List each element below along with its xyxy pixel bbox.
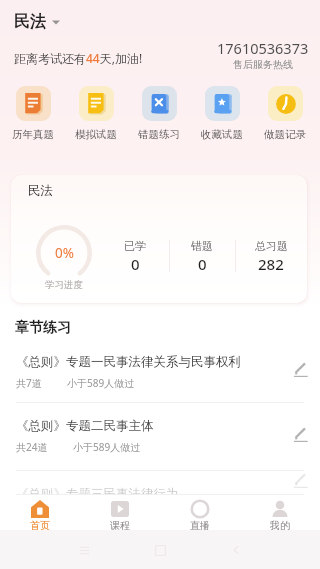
- button[interactable]: Menu: [75, 541, 93, 559]
- button[interactable]: 历年真题: [16, 86, 51, 121]
- staticText: 收藏试题: [201, 128, 243, 141]
- button[interactable]: 总习题: [241, 239, 301, 274]
- staticText: 17610536373: [217, 38, 309, 58]
- staticText: 总习题: [255, 239, 288, 253]
- staticText: 距离考试还有44天,加油!: [14, 50, 143, 66]
- button[interactable]: 直播: [160, 500, 240, 530]
- staticText: 已学: [124, 239, 146, 253]
- staticText: 共18道: [16, 508, 48, 522]
- staticText: 小于589人做过: [67, 376, 135, 390]
- staticText: 共24道: [16, 440, 48, 454]
- staticText: 错题: [191, 239, 213, 253]
- staticText: 《总则》专题一民事法律关系与民事权利: [16, 354, 241, 370]
- staticText: 《总则》专题三民事法律行为: [16, 486, 179, 502]
- staticText: 0: [198, 254, 207, 274]
- button[interactable]: 错题: [172, 239, 232, 274]
- button[interactable]: 编辑: [287, 468, 313, 492]
- button[interactable]: 课程: [80, 500, 160, 530]
- staticText: 售后服务热线: [233, 58, 293, 71]
- staticText: 0: [131, 254, 140, 274]
- staticText: 共7道: [16, 376, 42, 390]
- staticText: 0%: [55, 244, 74, 262]
- staticText: 小于589人做过: [73, 440, 141, 454]
- button[interactable]: 《总则》专题一民事法律关系与民事权利: [0, 341, 320, 403]
- staticText: 小于589人做过: [73, 508, 141, 522]
- staticText: 民法: [28, 183, 53, 199]
- staticText: 历年真题: [12, 128, 54, 141]
- button[interactable]: 收藏试题: [205, 86, 240, 121]
- button[interactable]: 民法: [11, 175, 307, 303]
- staticText: 模拟试题: [75, 128, 117, 141]
- staticText: 学习进度: [37, 279, 91, 291]
- staticText: 章节练习: [15, 319, 71, 337]
- button[interactable]: 编辑: [287, 356, 313, 382]
- staticText: 民法: [14, 12, 46, 32]
- staticText: 课程: [110, 519, 130, 530]
- staticText: 错题练习: [138, 128, 180, 141]
- button[interactable]: 首页: [0, 500, 80, 530]
- staticText: 直播: [190, 519, 210, 530]
- staticText: 282: [258, 254, 284, 274]
- button[interactable]: 做题记录: [268, 86, 303, 121]
- staticText: 首页: [30, 519, 50, 530]
- button[interactable]: 《总则》专题三民事法律行为: [0, 471, 320, 495]
- button[interactable]: 民法: [14, 12, 60, 32]
- button[interactable]: 已学: [105, 239, 165, 274]
- button[interactable]: Home: [151, 541, 169, 559]
- button[interactable]: 编辑: [287, 421, 313, 447]
- button[interactable]: 模拟试题: [79, 86, 114, 121]
- staticText: 《总则》专题二民事主体: [16, 418, 154, 434]
- button[interactable]: 错题练习: [142, 86, 177, 121]
- button[interactable]: 我的: [240, 500, 320, 530]
- staticText: 我的: [270, 519, 290, 530]
- button[interactable]: 17610536373: [217, 38, 309, 71]
- button[interactable]: 《总则》专题二民事主体: [0, 403, 320, 471]
- staticText: 做题记录: [264, 128, 306, 141]
